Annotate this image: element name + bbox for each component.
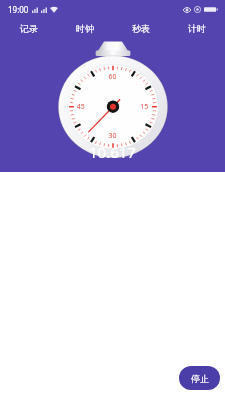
- button[interactable]: 停止: [179, 366, 220, 390]
- staticText: 停止: [191, 373, 209, 384]
- button[interactable]: 计时: [169, 18, 225, 38]
- staticText: 计时: [188, 23, 206, 34]
- button[interactable]: 秒表: [113, 18, 169, 38]
- other: Stopwatch dial: [57, 40, 169, 160]
- staticText: 秒表: [132, 23, 150, 34]
- staticText: 记录: [20, 23, 38, 34]
- staticText: 10.617: [89, 142, 136, 162]
- button[interactable]: 记录: [0, 18, 57, 38]
- staticText: 时钟: [76, 23, 94, 34]
- button[interactable]: 时钟: [57, 18, 113, 38]
- staticText: 19:00: [8, 4, 29, 15]
